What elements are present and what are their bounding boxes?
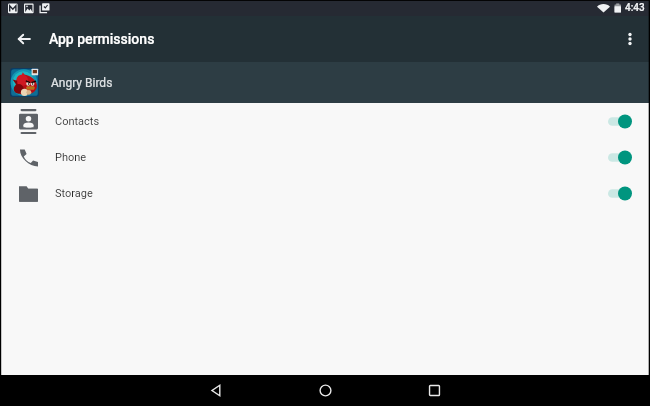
button[interactable]: Home xyxy=(307,375,343,406)
staticText: Contacts xyxy=(55,115,608,128)
staticText: Storage xyxy=(55,187,608,200)
button[interactable]: Back xyxy=(198,375,234,406)
button[interactable]: Contacts permission toggle xyxy=(608,111,632,131)
staticText: Phone xyxy=(55,151,608,164)
staticText: App permissions xyxy=(49,31,155,47)
button[interactable]: Storage permission toggle xyxy=(608,183,632,203)
button[interactable]: Angry Birds xyxy=(0,62,650,103)
staticText: Angry Birds xyxy=(51,76,113,90)
button[interactable]: Recent apps xyxy=(416,375,452,406)
button[interactable]: Storage xyxy=(0,175,650,211)
button[interactable]: More options xyxy=(611,20,649,58)
button[interactable]: Phone permission toggle xyxy=(608,147,632,167)
button[interactable]: Phone xyxy=(0,139,650,175)
button[interactable]: Navigate up xyxy=(5,20,43,58)
staticText: 4:43 xyxy=(625,2,645,14)
button[interactable]: Contacts xyxy=(0,103,650,139)
